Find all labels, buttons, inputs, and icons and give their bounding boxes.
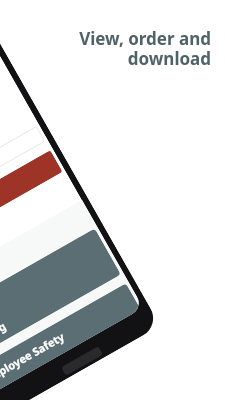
button[interactable] [0,150,63,261]
staticText: Employee Safety [0,329,67,387]
button[interactable]: Training [0,228,121,363]
staticText: View, order and download [71,27,211,70]
staticText: Training [0,318,8,354]
button[interactable] [0,126,45,230]
button[interactable]: Employee Safety [0,283,141,398]
